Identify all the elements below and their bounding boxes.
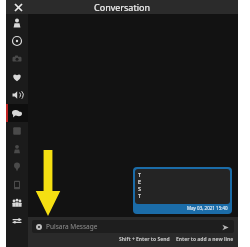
button[interactable]: Close (6, 0, 30, 14)
staticText: Conversation (94, 1, 150, 13)
button[interactable]: clock (6, 32, 28, 50)
staticText: May 03, 2021 15:40 (187, 205, 228, 211)
button[interactable]: pin (6, 158, 28, 176)
button[interactable]: heart (6, 68, 28, 86)
button[interactable]: Pulsara Message (32, 220, 234, 233)
button[interactable]: camera (6, 50, 28, 68)
button[interactable]: doc (6, 176, 28, 194)
button[interactable]: person2 (6, 140, 28, 158)
staticText: S (138, 185, 142, 192)
button[interactable]: chat (6, 104, 28, 122)
button[interactable]: T (133, 167, 232, 214)
staticText: Pulsara Message (46, 222, 98, 231)
staticText: T (138, 171, 142, 178)
button[interactable]: person (6, 14, 28, 32)
staticText: T (138, 192, 142, 199)
button[interactable]: square (6, 122, 28, 140)
button[interactable]: speaker (6, 86, 28, 104)
button[interactable]: team (6, 194, 28, 212)
button[interactable]: menu (6, 212, 28, 230)
staticText: Enter to add a new line (176, 236, 234, 243)
staticText: Shift + Enter to Send (119, 236, 170, 243)
staticText: E (138, 178, 142, 185)
button[interactable]: Send (220, 222, 230, 232)
